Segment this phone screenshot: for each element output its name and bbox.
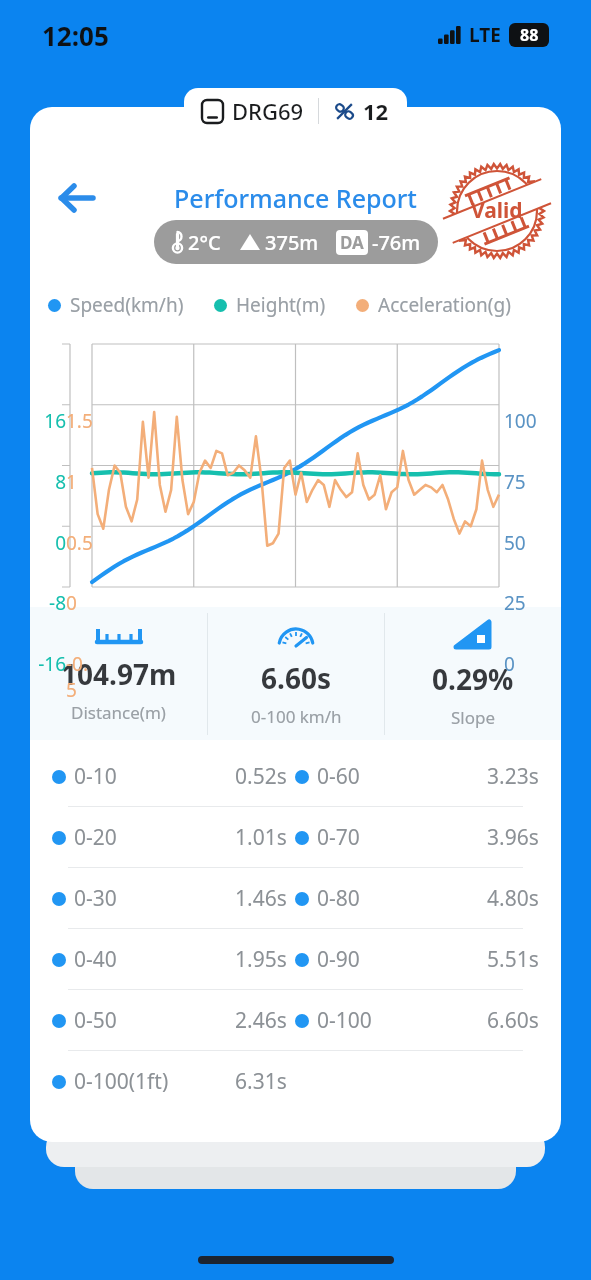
staticText: Performance Report — [30, 181, 561, 215]
button[interactable]: 0-50 — [30, 990, 561, 1050]
staticText: 0-10 — [74, 762, 117, 791]
staticText: 0-100 km/h — [251, 705, 342, 728]
staticText: Acceleration(g) — [378, 292, 511, 318]
button[interactable]: 6.60s — [208, 607, 384, 740]
staticText: 0 — [32, 530, 66, 556]
staticText: 0-80 — [317, 884, 360, 913]
staticText: 0.29% — [432, 660, 514, 698]
button[interactable]: 0-100(1ft) — [30, 1051, 561, 1111]
staticText: 8 — [32, 469, 66, 495]
staticText: 0-90 — [317, 945, 360, 974]
staticText: 1.01s — [235, 823, 287, 852]
button[interactable]: 2°C — [171, 220, 421, 264]
button[interactable]: Back — [46, 167, 108, 229]
staticText: 1.5 — [66, 408, 94, 434]
staticText: 2.46s — [235, 1006, 287, 1035]
staticText: 6.60s — [487, 1006, 539, 1035]
staticText: 0 — [66, 590, 94, 616]
staticText: 0 — [504, 651, 554, 677]
staticText: 0.52s — [235, 762, 287, 791]
staticText: 1.95s — [235, 945, 287, 974]
staticText: 0.5 — [66, 530, 94, 556]
staticText: 3.96s — [487, 823, 539, 852]
staticText: Speed(km/h) — [70, 292, 184, 318]
staticText: 6.31s — [235, 1067, 287, 1096]
staticText: 75 — [504, 469, 554, 495]
staticText: 1 — [66, 469, 94, 495]
button[interactable]: 0-10 — [30, 746, 561, 806]
staticText: 104.97m — [61, 655, 177, 693]
staticText: 2°C — [188, 229, 221, 256]
staticText: Valid — [471, 196, 523, 225]
staticText: 3.23s — [487, 762, 539, 791]
staticText: Slope — [451, 706, 496, 729]
staticText: DRG69 — [232, 96, 304, 126]
staticText: 100 — [504, 408, 554, 434]
staticText: 12:05 — [42, 18, 109, 53]
staticText: DA — [340, 231, 364, 254]
staticText: 25 — [504, 590, 554, 616]
staticText: 0-70 — [317, 823, 360, 852]
staticText: 0-30 — [74, 884, 117, 913]
button[interactable]: 0-20 — [30, 807, 561, 867]
staticText: -8 — [32, 590, 66, 616]
staticText: 88 — [520, 24, 539, 46]
staticText: 4.80s — [487, 884, 539, 913]
staticText: 16 — [32, 408, 66, 434]
staticText: 0-20 — [74, 823, 117, 852]
staticText: 5.51s — [487, 945, 539, 974]
staticText: 12 — [363, 96, 389, 126]
staticText: 50 — [504, 530, 554, 556]
staticText: 0-100(1ft) — [74, 1067, 169, 1096]
button[interactable]: 0.29% — [385, 607, 561, 740]
staticText: Height(m) — [236, 292, 326, 318]
staticText: -16 — [32, 651, 66, 677]
staticText: Distance(m) — [71, 701, 166, 724]
staticText: LTE — [469, 22, 501, 48]
staticText: 375m — [265, 229, 319, 256]
staticText: 0-100 — [317, 1006, 372, 1035]
staticText: -0.5 — [66, 651, 94, 703]
button[interactable]: 0-40 — [30, 929, 561, 989]
staticText: 0-60 — [317, 762, 360, 791]
staticText: 0-40 — [74, 945, 117, 974]
staticText: 0-50 — [74, 1006, 117, 1035]
staticText: 1.46s — [235, 884, 287, 913]
staticText: -76m — [372, 229, 421, 256]
button[interactable]: 104.97m — [30, 607, 207, 740]
button[interactable]: 0-30 — [30, 868, 561, 928]
staticText: 6.60s — [261, 659, 331, 697]
button[interactable]: DRG69 — [202, 88, 389, 134]
